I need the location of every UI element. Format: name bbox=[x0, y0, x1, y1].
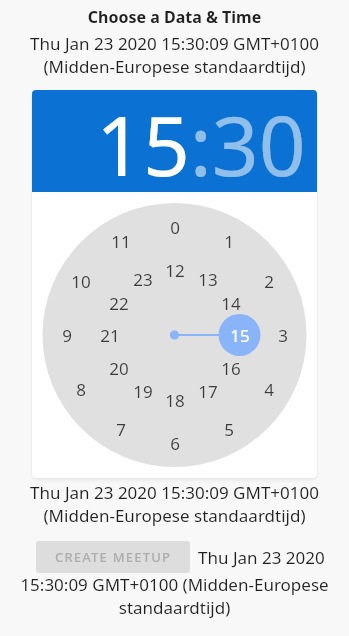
staticText: 16 bbox=[221, 357, 241, 380]
staticText: (Midden-Europese standaardtijd) bbox=[0, 504, 349, 527]
staticText: 7 bbox=[116, 418, 126, 441]
staticText: 15:30:09 GMT+0100 (Midden-Europese bbox=[0, 573, 349, 596]
staticText: 4 bbox=[264, 378, 274, 401]
staticText: 8 bbox=[76, 378, 86, 401]
staticText: 15 bbox=[230, 324, 250, 347]
staticText: 19 bbox=[133, 380, 153, 403]
staticText: 6 bbox=[170, 432, 180, 455]
staticText: Choose a Data & Time bbox=[0, 6, 349, 28]
staticText: 20 bbox=[109, 357, 129, 380]
button[interactable]: 15:30 bbox=[96, 90, 306, 190]
staticText: 13 bbox=[198, 268, 218, 291]
staticText: 18 bbox=[165, 389, 185, 412]
staticText: 1 bbox=[224, 230, 234, 253]
button[interactable]: CREATE MEETUP bbox=[36, 541, 190, 573]
staticText: CREATE MEETUP bbox=[55, 548, 172, 566]
staticText: (Midden-Europese standaardtijd) bbox=[0, 55, 349, 78]
staticText: 22 bbox=[109, 292, 129, 315]
staticText: 5 bbox=[224, 418, 234, 441]
staticText: 17 bbox=[198, 380, 218, 403]
staticText: 2 bbox=[264, 270, 274, 293]
staticText: 14 bbox=[221, 292, 241, 315]
staticText: Thu Jan 23 2020 bbox=[198, 546, 325, 569]
staticText: 11 bbox=[111, 230, 131, 253]
staticText: 21 bbox=[100, 324, 120, 347]
button[interactable]: Select hour on 24 hour clock bbox=[32, 192, 317, 478]
staticText: Thu Jan 23 2020 15:30:09 GMT+0100 bbox=[0, 481, 349, 504]
staticText: 23 bbox=[133, 268, 153, 291]
staticText: 9 bbox=[62, 324, 72, 347]
staticText: Thu Jan 23 2020 15:30:09 GMT+0100 bbox=[0, 32, 349, 55]
staticText: 3 bbox=[278, 324, 288, 347]
staticText: 10 bbox=[71, 270, 91, 293]
staticText: 0 bbox=[170, 216, 180, 239]
staticText: standaardtijd) bbox=[0, 596, 349, 619]
staticText: 12 bbox=[165, 259, 185, 282]
